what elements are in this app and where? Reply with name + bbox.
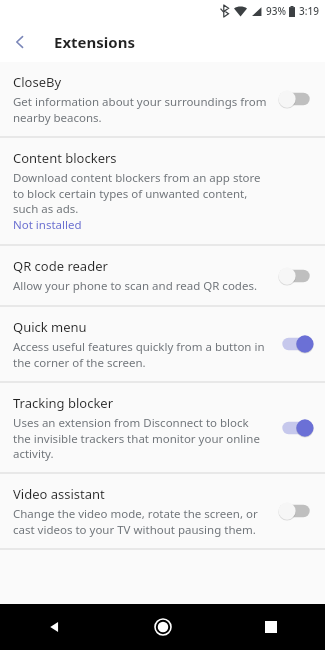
- button[interactable]: Back: [0, 22, 40, 62]
- button[interactable]: Home: [109, 604, 217, 650]
- button[interactable]: Quick menu: [0, 307, 325, 381]
- staticText: 93%: [266, 4, 286, 18]
- staticText: Access useful features quickly from a bu…: [13, 339, 269, 370]
- staticText: Not installed: [13, 217, 82, 233]
- staticText: Change the video mode, rotate the screen…: [13, 506, 269, 537]
- button[interactable]: Back: [0, 604, 109, 650]
- button[interactable]: Video assistant: [0, 474, 325, 548]
- staticText: Content blockers: [13, 149, 117, 167]
- staticText: CloseBy: [13, 73, 62, 91]
- button[interactable]: CloseBy: [0, 62, 325, 136]
- button[interactable]: QR code reader: [0, 246, 325, 305]
- button[interactable]: Off: [277, 87, 315, 111]
- button[interactable]: On: [277, 416, 315, 440]
- staticText: Video assistant: [13, 485, 105, 503]
- staticText: Get information about your surroundings …: [13, 94, 269, 125]
- staticText: Quick menu: [13, 318, 87, 336]
- staticText: 3:19: [299, 4, 319, 18]
- button[interactable]: Recent apps: [217, 604, 325, 650]
- staticText: Tracking blocker: [13, 394, 114, 412]
- button[interactable]: Off: [277, 264, 315, 288]
- staticText: Download content blockers from an app st…: [13, 170, 273, 216]
- staticText: QR code reader: [13, 257, 108, 275]
- button[interactable]: Tracking blocker: [0, 383, 325, 472]
- button[interactable]: Content blockers: [0, 138, 325, 244]
- button[interactable]: On: [277, 332, 315, 356]
- button[interactable]: Off: [277, 499, 315, 523]
- staticText: Allow your phone to scan and read QR cod…: [13, 278, 257, 294]
- staticText: Extensions: [54, 32, 135, 52]
- staticText: Uses an extension from Disconnect to blo…: [13, 415, 269, 461]
